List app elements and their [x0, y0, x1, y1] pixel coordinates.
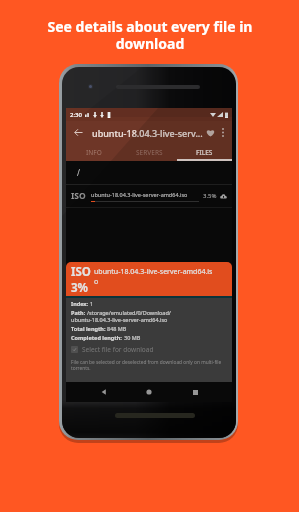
button[interactable]: Navigate up — [71, 125, 86, 140]
staticText: Completed length: — [71, 334, 124, 341]
staticText: ubuntu-18.04.3-live-serv... — [92, 127, 203, 139]
staticText: ISO — [71, 264, 91, 280]
staticText: ISO — [71, 190, 86, 202]
staticText: 3% — [71, 280, 88, 296]
staticText: ubuntu-18.04.3-live-server-amd64.iso — [71, 316, 168, 323]
button[interactable]: Recent apps — [187, 384, 203, 400]
button[interactable]: Add to favourites — [203, 125, 218, 140]
staticText: / — [77, 167, 80, 178]
button[interactable]: SERVERS — [122, 144, 177, 161]
button[interactable]: ISO — [66, 262, 232, 296]
staticText: o — [94, 277, 99, 287]
staticText: Index: — [71, 300, 90, 307]
button[interactable]: FILES — [177, 144, 232, 161]
button[interactable]: More options — [219, 126, 227, 139]
staticText: INFO — [86, 148, 102, 157]
staticText: ubuntu-18.04.3-live-server-amd64.is — [94, 267, 213, 277]
staticText: Path: — [71, 309, 87, 316]
staticText: Select file for download — [82, 345, 154, 354]
staticText: Total length: — [71, 325, 107, 332]
button[interactable]: ISO — [66, 185, 232, 207]
button[interactable]: / — [66, 161, 232, 184]
staticText: ubuntu-18.04.3-live-server-amd64.iso — [91, 191, 188, 198]
staticText: 30 MB — [124, 334, 141, 341]
staticText: See details about every file in download — [37, 17, 263, 53]
staticText: 1 — [90, 300, 94, 307]
button[interactable]: Back — [96, 384, 112, 400]
staticText: /storage/emulated/0/Download/ — [87, 309, 171, 316]
staticText: 3.5% — [203, 192, 217, 200]
staticText: 848 MB — [107, 325, 127, 332]
staticText: SERVERS — [136, 148, 163, 157]
staticText: 2:30 — [70, 111, 82, 119]
staticText: File can be selected or deselected from … — [71, 359, 228, 371]
button[interactable]: INFO — [66, 144, 122, 161]
staticText: FILES — [196, 148, 213, 157]
button[interactable]: Home — [141, 384, 157, 400]
button[interactable]: Select file for download — [71, 345, 154, 354]
